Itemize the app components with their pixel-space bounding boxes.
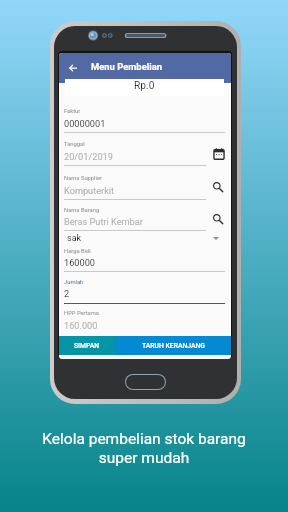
button[interactable]: sak [64,233,225,246]
button[interactable]: Home [125,374,166,390]
staticText: 2 [64,288,70,299]
staticText: sak [67,233,82,244]
staticText: Nama Barang [64,207,100,214]
staticText: 20/01/2019 [64,151,113,162]
staticText: Komputerkit [64,185,115,196]
button[interactable]: SIMPAN [59,336,115,355]
staticText: Harga Beli [64,248,91,255]
staticText: 160000 [64,257,95,268]
staticText: 160.000 [64,320,98,331]
staticText: Jumlah [64,279,84,286]
button[interactable]: Pick date [213,148,225,160]
button[interactable]: Search [212,181,224,193]
staticText: Beras Putri Kembar [64,216,143,227]
button[interactable]: Back [61,56,84,79]
button[interactable]: Search [212,213,224,225]
staticText: Rp.0 [134,80,155,92]
staticText: Kelola pembelian stok barang super mudah [0,430,288,467]
staticText: 00000001 [64,118,106,129]
staticText: Tanggal [64,141,85,148]
button[interactable]: Rp.0 [65,79,224,96]
staticText: Menu Pembelian [91,61,162,72]
staticText: HPP Pertama [64,310,99,317]
staticText: Nama Supplier [64,175,102,182]
button[interactable]: TARUH KERANJANG [115,336,231,355]
staticText: SIMPAN [74,342,100,350]
staticText: TARUH KERANJANG [142,342,205,350]
staticText: Faktur [64,108,81,115]
